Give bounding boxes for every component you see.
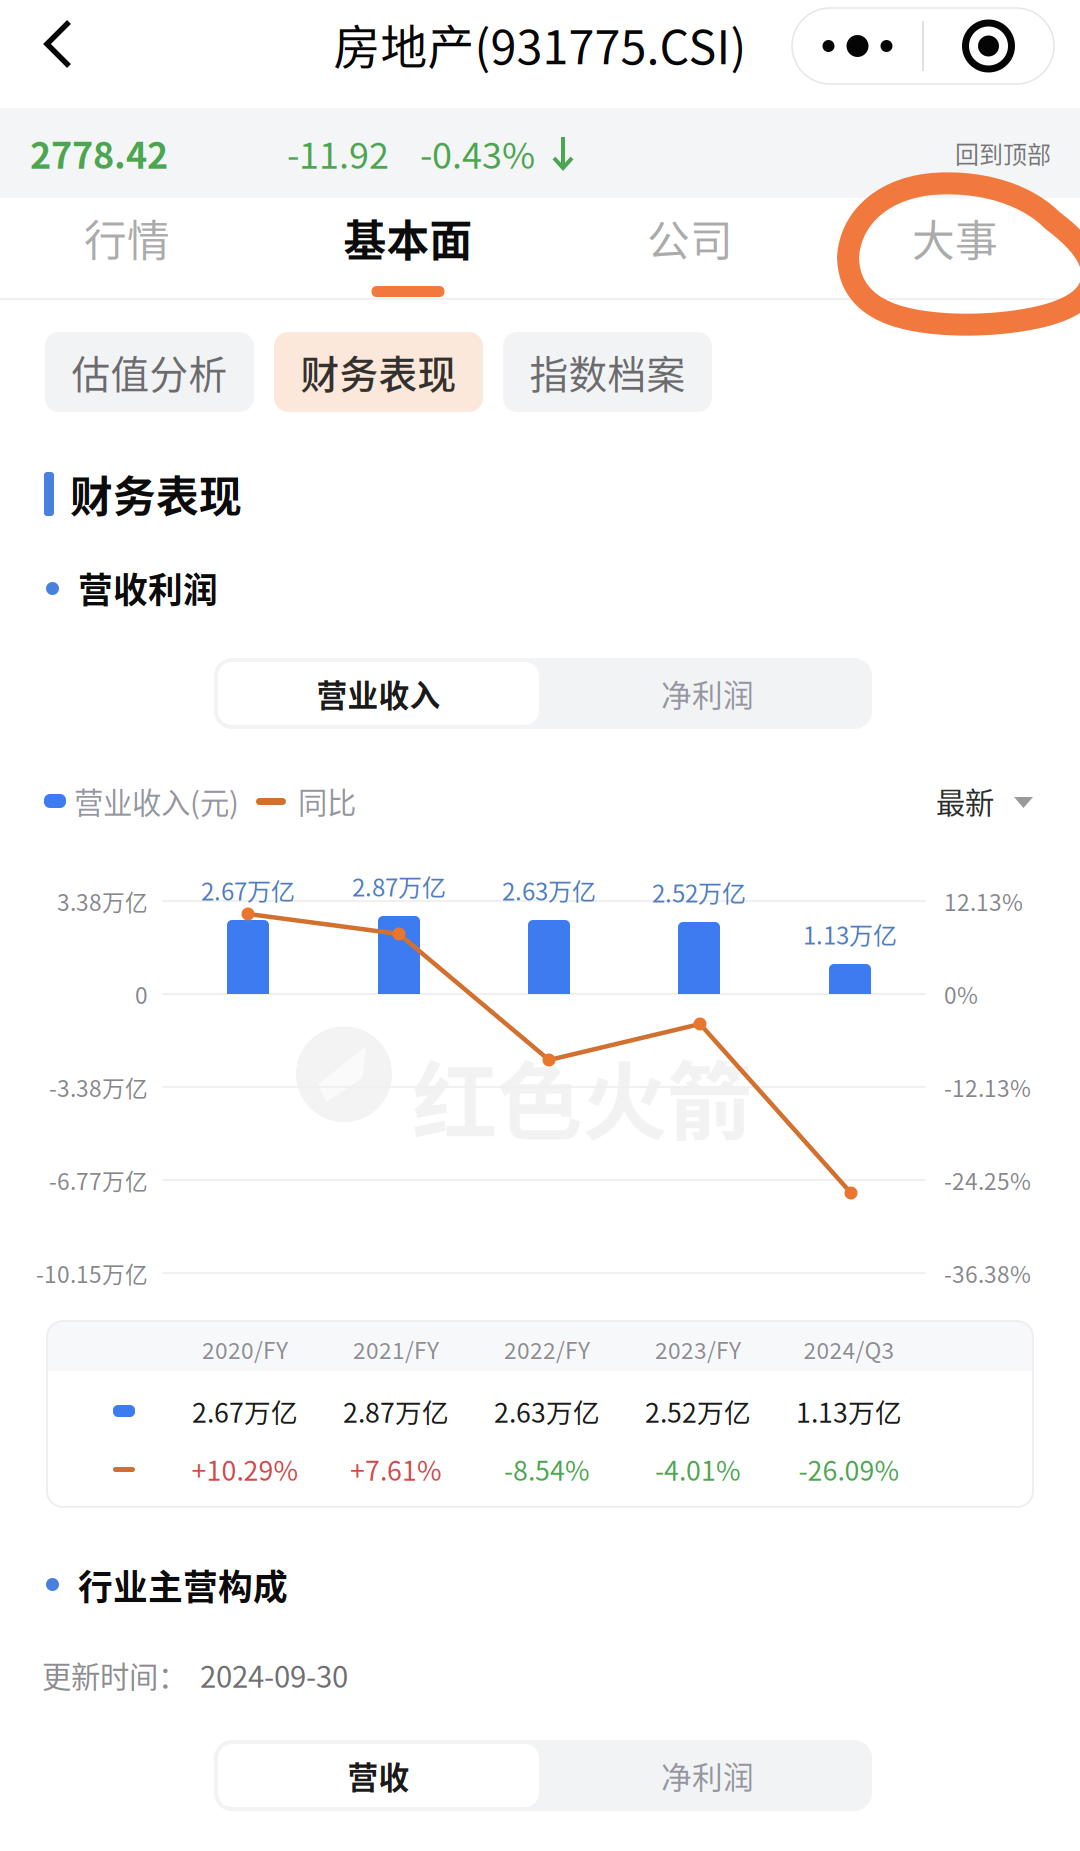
staticText: 行业主营构成 xyxy=(78,1560,288,1610)
staticText: 营业收入 xyxy=(316,671,440,716)
staticText: -8.54% xyxy=(504,1450,590,1488)
button[interactable]: 大事 xyxy=(825,198,1080,300)
staticText: 营收利润 xyxy=(78,563,218,613)
button[interactable]: 行情 xyxy=(0,198,257,300)
staticText: -26.09% xyxy=(798,1450,899,1488)
button[interactable]: 基本面 xyxy=(278,198,538,300)
staticText: 3.38万亿 xyxy=(57,885,148,917)
staticText: 2021/FY xyxy=(353,1333,439,1365)
staticText: -4.01% xyxy=(655,1450,741,1488)
staticText: -6.77万亿 xyxy=(49,1164,148,1196)
staticText: 2020/FY xyxy=(202,1333,288,1365)
staticText: 同比 xyxy=(298,780,356,822)
staticText: -10.15万亿 xyxy=(36,1257,148,1289)
staticText: 2.63万亿 xyxy=(494,1392,600,1430)
staticText: -0.43% xyxy=(420,127,535,179)
staticText: 估值分析 xyxy=(71,344,227,400)
staticText: 2024-09-30 xyxy=(200,1654,348,1696)
staticText: 大事 xyxy=(912,207,998,269)
staticText: 2.67万亿 xyxy=(201,873,295,907)
staticText: 2.67万亿 xyxy=(192,1392,298,1430)
button[interactable]: 估值分析 xyxy=(45,332,254,412)
staticText: 净利润 xyxy=(661,671,754,716)
button[interactable]: 营收 xyxy=(214,1740,543,1811)
staticText: -3.38万亿 xyxy=(49,1071,148,1103)
staticText: 2.52万亿 xyxy=(645,1392,751,1430)
button[interactable]: 公司 xyxy=(560,198,820,300)
staticText: 指数档案 xyxy=(529,344,685,400)
button[interactable]: Back xyxy=(0,0,116,108)
staticText: 2.63万亿 xyxy=(502,873,596,907)
staticText: 2778.42 xyxy=(30,127,168,179)
staticText: 基本面 xyxy=(343,207,472,269)
staticText: 营收 xyxy=(347,1753,409,1798)
staticText: 2.87万亿 xyxy=(352,869,446,903)
button[interactable]: 净利润 xyxy=(543,1740,872,1811)
staticText: 2.87万亿 xyxy=(343,1392,449,1430)
staticText: 12.13% xyxy=(944,885,1023,917)
staticText: +7.61% xyxy=(350,1450,442,1488)
staticText: 2.52万亿 xyxy=(652,875,746,909)
staticText: -11.92 xyxy=(287,127,389,179)
staticText: -24.25% xyxy=(944,1164,1031,1196)
button[interactable]: 指数档案 xyxy=(503,332,712,412)
staticText: 2024/Q3 xyxy=(803,1333,894,1365)
staticText: 最新 xyxy=(936,780,994,822)
staticText: -12.13% xyxy=(944,1071,1031,1103)
staticText: -36.38% xyxy=(944,1257,1031,1289)
button[interactable]: Close mini program xyxy=(923,8,1054,84)
staticText: 1.13万亿 xyxy=(803,917,897,951)
staticText: 0% xyxy=(944,978,978,1010)
staticText: 回到顶部 xyxy=(955,136,1051,170)
staticText: 红色火箭 xyxy=(412,1034,752,1158)
button[interactable]: 财务表现 xyxy=(274,332,483,412)
staticText: 行情 xyxy=(84,207,170,269)
staticText: +10.29% xyxy=(191,1450,298,1488)
staticText: 公司 xyxy=(647,207,733,269)
staticText: 财务表现 xyxy=(70,463,242,525)
staticText: 0 xyxy=(135,978,148,1010)
staticText: 房地产(931775.CSI) xyxy=(333,10,746,78)
staticText: 1.13万亿 xyxy=(796,1392,902,1430)
staticText: 营业收入(元) xyxy=(74,780,239,822)
staticText: 2022/FY xyxy=(504,1333,590,1365)
button[interactable]: 营业收入 xyxy=(214,658,543,729)
staticText: 财务表现 xyxy=(300,344,456,400)
button[interactable]: More options xyxy=(792,8,923,84)
button[interactable]: 回到顶部 xyxy=(851,108,1051,198)
button[interactable]: 净利润 xyxy=(543,658,872,729)
staticText: 2023/FY xyxy=(655,1333,741,1365)
staticText: 更新时间： xyxy=(42,1654,187,1696)
button[interactable]: 最新 xyxy=(936,766,1080,836)
staticText: 净利润 xyxy=(661,1753,754,1798)
